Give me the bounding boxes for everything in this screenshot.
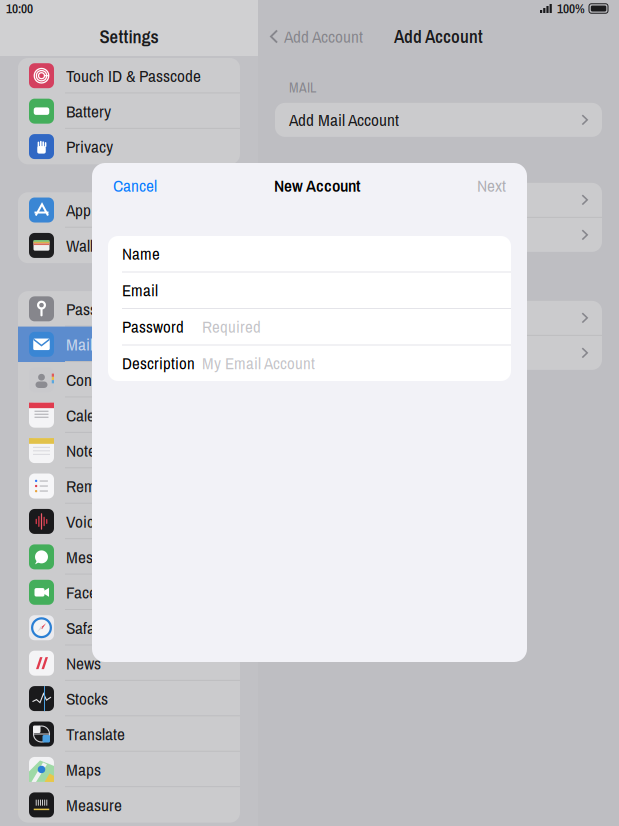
staticText: Messages: [66, 545, 131, 568]
staticText: Contacts: [66, 368, 122, 391]
button[interactable]: Battery: [18, 93, 240, 129]
staticText: Maps: [66, 758, 101, 781]
staticText: My Email Account: [202, 352, 315, 375]
staticText: News: [66, 651, 101, 675]
staticText: Reminders: [66, 474, 136, 498]
staticText: Add Account: [394, 24, 483, 49]
button[interactable]: Measure: [18, 787, 240, 823]
button[interactable]: [275, 336, 602, 370]
staticText: App Store: [66, 198, 129, 222]
button[interactable]: Calendar: [18, 397, 240, 433]
button[interactable]: Safari: [18, 610, 240, 645]
button[interactable]: FaceTime: [18, 575, 240, 610]
button[interactable]: Voice Memos: [18, 504, 240, 539]
staticText: Battery: [66, 99, 111, 123]
button[interactable]: Maps: [18, 752, 240, 787]
button[interactable]: Notes: [18, 433, 240, 468]
button[interactable]: [275, 183, 602, 217]
button[interactable]: News: [18, 645, 240, 681]
button[interactable]: Touch ID & Passcode: [18, 58, 240, 93]
staticText: New Account: [274, 174, 360, 197]
staticText: Email: [122, 279, 158, 302]
staticText: 100%: [557, 0, 585, 17]
button[interactable]: Contacts: [18, 362, 240, 397]
staticText: Calendar: [66, 403, 124, 427]
button[interactable]: Passwords: [18, 291, 240, 326]
button[interactable]: Reminders: [18, 468, 240, 504]
staticText: Privacy: [66, 135, 113, 158]
staticText: Description: [122, 352, 195, 375]
staticText: Settings: [99, 24, 158, 49]
button[interactable]: Add Account: [258, 19, 368, 53]
staticText: Password: [122, 315, 184, 338]
staticText: Notes: [66, 439, 103, 462]
button[interactable]: Translate: [18, 716, 240, 752]
staticText: Safari: [66, 616, 104, 639]
button[interactable]: Cancel: [108, 168, 162, 203]
button[interactable]: [275, 218, 602, 252]
button[interactable]: Mail: [18, 327, 240, 362]
button[interactable]: Stocks: [18, 681, 240, 716]
staticText: Required: [202, 315, 261, 338]
staticText: Cancel: [113, 174, 157, 197]
staticText: Passwords: [66, 297, 135, 320]
staticText: Measure: [66, 793, 122, 816]
staticText: 10:00: [6, 0, 33, 17]
staticText: Add Mail Account: [289, 108, 399, 131]
staticText: Stocks: [66, 687, 108, 710]
staticText: Add Account: [284, 25, 363, 48]
staticText: Wallet: [66, 234, 105, 257]
staticText: Mail: [66, 333, 93, 356]
staticText: MAIL: [289, 78, 316, 97]
staticText: Next: [477, 174, 506, 197]
button[interactable]: Add Mail Account: [275, 103, 602, 137]
button[interactable]: Privacy: [18, 129, 240, 164]
button[interactable]: Next: [472, 168, 511, 203]
staticText: Touch ID & Passcode: [66, 64, 201, 87]
staticText: Name: [122, 242, 160, 265]
staticText: FaceTime: [66, 581, 129, 604]
button[interactable]: App Store: [18, 192, 240, 228]
button[interactable]: Messages: [18, 539, 240, 575]
staticText: Translate: [66, 722, 125, 746]
button[interactable]: [275, 301, 602, 335]
button[interactable]: Wallet: [18, 228, 240, 263]
staticText: Voice Memos: [66, 510, 153, 533]
